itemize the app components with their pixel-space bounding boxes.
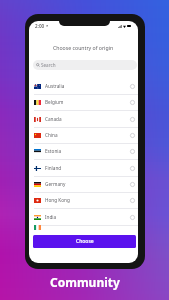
other: Location bbox=[46, 25, 48, 27]
staticText: Choose country of origin bbox=[53, 44, 114, 51]
staticText: 2:00 bbox=[35, 23, 45, 29]
button[interactable]: Australia bbox=[29, 78, 138, 94]
staticText: Finland bbox=[45, 165, 62, 171]
staticText: India bbox=[45, 214, 57, 220]
staticText: China bbox=[45, 132, 58, 138]
button[interactable]: China bbox=[29, 127, 138, 143]
staticText: Search bbox=[41, 62, 56, 68]
staticText: Hong Kong bbox=[45, 197, 70, 203]
staticText: Community bbox=[50, 274, 120, 290]
other: Cellular signal bbox=[118, 25, 122, 28]
button[interactable] bbox=[29, 225, 138, 231]
staticText: Choose bbox=[76, 238, 94, 245]
staticText: Australia bbox=[45, 83, 65, 89]
other: Wifi bbox=[123, 25, 126, 28]
button[interactable]: Search bbox=[33, 60, 137, 70]
button[interactable]: Choose bbox=[33, 235, 136, 248]
staticText: Belgium bbox=[45, 99, 64, 105]
button[interactable]: Hong Kong bbox=[29, 192, 138, 208]
button[interactable]: Canada bbox=[29, 111, 138, 127]
button[interactable]: Estonia bbox=[29, 143, 138, 159]
button[interactable]: Germany bbox=[29, 176, 138, 192]
button[interactable]: Finland bbox=[29, 160, 138, 176]
button[interactable]: Belgium bbox=[29, 94, 138, 110]
staticText: Germany bbox=[45, 181, 66, 187]
button[interactable]: India bbox=[29, 209, 138, 225]
staticText: Canada bbox=[45, 116, 62, 122]
staticText: Estonia bbox=[45, 148, 62, 154]
